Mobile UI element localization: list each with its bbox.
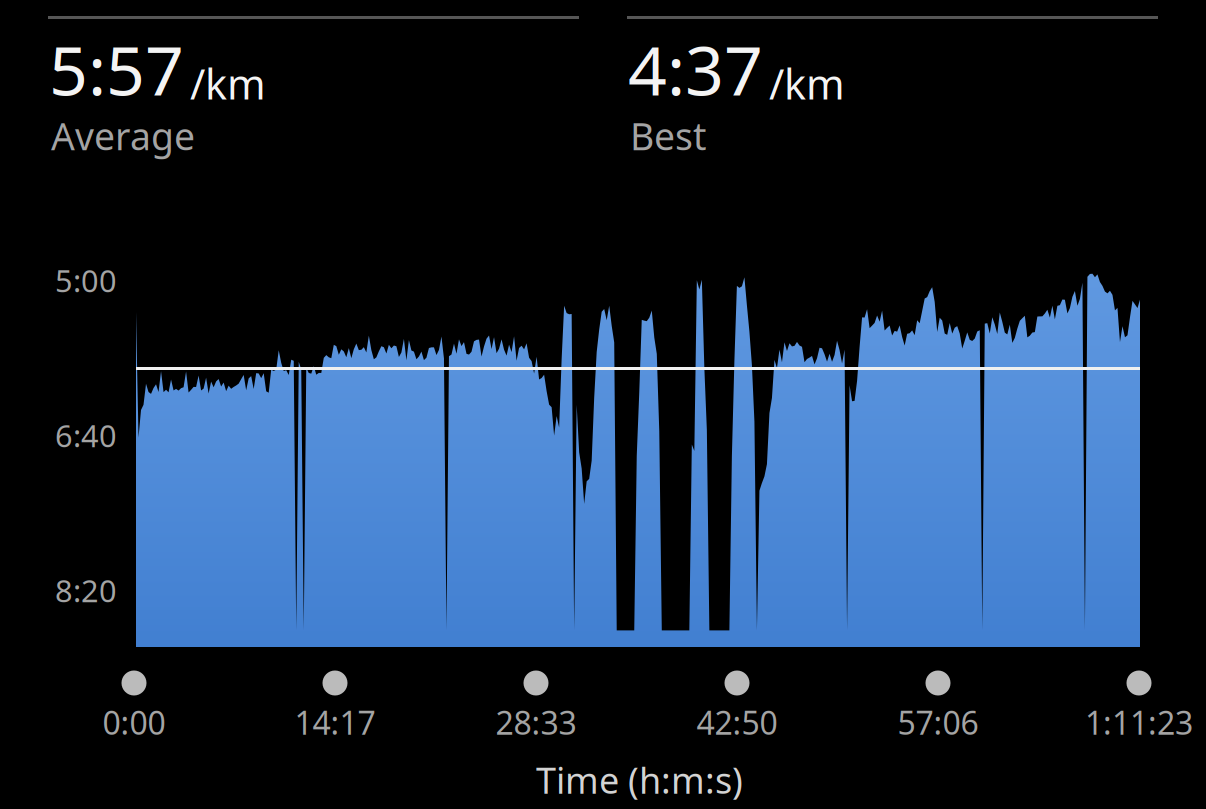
staticText: 14:17 [294, 701, 375, 743]
staticText: Best [630, 111, 706, 161]
staticText: Time (h:m:s) [536, 756, 743, 804]
staticText: 57:06 [897, 701, 978, 743]
staticText: 8:20 [55, 570, 117, 611]
staticText: Average [51, 111, 195, 161]
staticText: 1:11:23 [1085, 701, 1193, 743]
staticText: 4:37 [628, 24, 763, 114]
staticText: 6:40 [55, 415, 117, 456]
staticText: /km [769, 56, 845, 111]
staticText: 5:57 [49, 24, 184, 114]
staticText: 28:33 [495, 701, 576, 743]
staticText: 42:50 [696, 701, 777, 743]
staticText: /km [190, 56, 266, 111]
staticText: 0:00 [102, 701, 165, 743]
staticText: 5:00 [55, 260, 117, 301]
